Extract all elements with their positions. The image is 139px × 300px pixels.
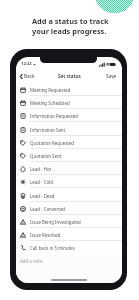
staticText: Issue Being Investigated xyxy=(30,219,81,225)
button[interactable]: Back xyxy=(20,73,35,79)
button[interactable]: Quotation Requested xyxy=(16,136,122,149)
button[interactable]: Lead - Hot xyxy=(16,162,122,175)
staticText: Add a note xyxy=(20,258,43,264)
staticText: 12:22 xyxy=(21,61,32,67)
staticText: Lead - Dead xyxy=(30,193,55,199)
staticText: Meeting Requested xyxy=(30,87,71,93)
button[interactable]: Information Sent xyxy=(16,123,122,136)
button[interactable]: Issue Being Investigated xyxy=(16,215,122,228)
staticText: Information Requested xyxy=(30,113,78,119)
button[interactable]: Meeting Scheduled xyxy=(16,96,122,109)
staticText: Information Sent xyxy=(30,127,66,133)
staticText: Call back in 5 minutes xyxy=(30,245,75,251)
staticText: Meeting Scheduled xyxy=(30,100,70,106)
staticText: Issue Resolved xyxy=(30,232,61,238)
staticText: Back xyxy=(24,73,35,79)
staticText: Lead - Hot xyxy=(30,166,52,172)
staticText: Lead - Converted xyxy=(30,206,66,212)
staticText: Add a status to track your leads progres… xyxy=(32,16,109,37)
button[interactable]: Quotation Sent xyxy=(16,149,122,162)
staticText: Set status xyxy=(58,73,81,79)
button[interactable]: Meeting Requested xyxy=(16,83,122,96)
button[interactable]: Call back in 5 minutes xyxy=(16,241,122,254)
button[interactable]: Lead - Dead xyxy=(16,189,122,202)
staticText: Lead - Cold xyxy=(30,179,53,185)
staticText: Quotation Sent xyxy=(30,153,62,159)
button[interactable]: Save xyxy=(106,73,117,79)
button[interactable]: Issue Resolved xyxy=(16,228,122,241)
button[interactable]: Lead - Cold xyxy=(16,175,122,188)
staticText: Quotation Requested xyxy=(30,140,75,146)
button[interactable]: Information Requested xyxy=(16,109,122,122)
button[interactable]: Lead - Converted xyxy=(16,202,122,215)
